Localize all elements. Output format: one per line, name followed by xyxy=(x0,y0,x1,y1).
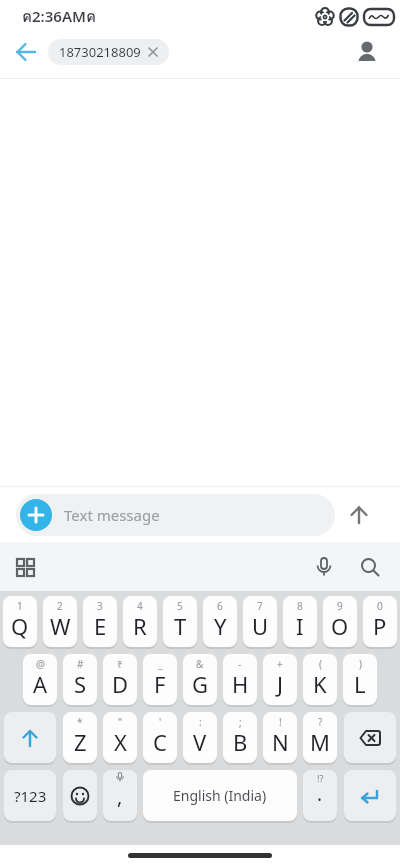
staticText: E xyxy=(94,611,107,641)
staticText: , xyxy=(117,783,123,810)
button[interactable]: 3 xyxy=(83,596,117,647)
staticText: R xyxy=(133,611,147,641)
staticText: C xyxy=(153,727,167,757)
button[interactable]: 4 xyxy=(123,596,157,647)
staticText: 6 xyxy=(217,599,223,613)
staticText: ! xyxy=(279,715,282,729)
button[interactable] xyxy=(10,552,40,582)
staticText: G xyxy=(192,669,209,699)
button[interactable]: 2 xyxy=(43,596,77,647)
button[interactable]: @ xyxy=(23,654,57,705)
button[interactable]: 7 xyxy=(243,596,277,647)
staticText: ) xyxy=(359,657,362,671)
button[interactable]: 9 xyxy=(323,596,357,647)
staticText: " xyxy=(118,715,123,729)
staticText: Text message xyxy=(64,505,160,525)
staticText: + xyxy=(277,657,283,671)
button[interactable] xyxy=(344,770,396,821)
button[interactable]: 18730218809 xyxy=(48,39,169,65)
staticText: T xyxy=(174,611,187,641)
staticText: & xyxy=(196,657,204,671)
button[interactable]: ; xyxy=(223,712,257,763)
button[interactable]: + xyxy=(263,654,297,705)
button[interactable]: : xyxy=(183,712,217,763)
staticText: - xyxy=(238,657,242,671)
button[interactable] xyxy=(20,499,52,531)
staticText: ? xyxy=(318,715,323,729)
button[interactable]: - xyxy=(223,654,257,705)
staticText: 8 xyxy=(297,599,303,613)
staticText: J xyxy=(277,669,284,699)
button[interactable]: " xyxy=(103,712,137,763)
staticText: H xyxy=(232,669,249,699)
button[interactable]: ?123 xyxy=(4,770,56,821)
staticText: W xyxy=(50,611,71,641)
staticText: * xyxy=(77,715,83,729)
button[interactable]: , xyxy=(103,770,137,821)
staticText: A xyxy=(33,669,48,699)
button[interactable]: 0 xyxy=(363,596,397,647)
button[interactable]: ' xyxy=(143,712,177,763)
staticText: S xyxy=(74,669,87,699)
staticText: M xyxy=(310,727,330,757)
staticText: D xyxy=(112,669,129,699)
button[interactable]: 8 xyxy=(283,596,317,647)
staticText: 4 xyxy=(137,599,143,613)
staticText: 5 xyxy=(177,599,183,613)
button[interactable] xyxy=(8,34,44,70)
button[interactable] xyxy=(308,551,340,583)
button[interactable] xyxy=(350,35,384,69)
staticText: O xyxy=(331,611,349,641)
staticText: 1 xyxy=(17,599,23,613)
staticText: ( xyxy=(319,657,322,671)
staticText: !? xyxy=(317,772,324,784)
staticText: . xyxy=(317,781,323,807)
staticText: 9 xyxy=(337,599,343,613)
staticText: P xyxy=(373,611,387,641)
staticText: 2 xyxy=(57,599,63,613)
staticText: B xyxy=(233,727,248,757)
button[interactable]: Text message xyxy=(16,494,335,536)
button[interactable]: 1 xyxy=(3,596,37,647)
button[interactable]: # xyxy=(63,654,97,705)
button[interactable] xyxy=(63,770,97,821)
staticText: # xyxy=(77,657,84,671)
staticText: ; xyxy=(239,715,242,729)
staticText: Q xyxy=(11,611,29,641)
staticText: I xyxy=(296,611,304,641)
button[interactable]: ! xyxy=(263,712,297,763)
staticText: ?123 xyxy=(14,786,47,806)
button[interactable]: ? xyxy=(303,712,337,763)
button[interactable]: ₹ xyxy=(103,654,137,705)
staticText: U xyxy=(252,611,269,641)
staticText: Y xyxy=(214,611,227,641)
staticText: Z xyxy=(74,727,87,757)
staticText: N xyxy=(272,727,289,757)
button[interactable] xyxy=(344,712,396,763)
staticText: 3 xyxy=(97,599,103,613)
staticText: K xyxy=(313,669,327,699)
button[interactable]: English (India) xyxy=(143,770,297,821)
button[interactable]: _ xyxy=(143,654,177,705)
staticText: F xyxy=(154,669,166,699)
staticText: L xyxy=(354,669,366,699)
button[interactable] xyxy=(339,495,379,535)
button[interactable]: ) xyxy=(343,654,377,705)
staticText: ' xyxy=(159,715,162,729)
button[interactable]: ( xyxy=(303,654,337,705)
button[interactable] xyxy=(354,551,386,583)
button[interactable]: 6 xyxy=(203,596,237,647)
staticText: _ xyxy=(158,657,163,671)
button[interactable]: & xyxy=(183,654,217,705)
staticText: English (India) xyxy=(173,786,267,805)
staticText: V xyxy=(193,727,207,757)
staticText: 7 xyxy=(257,599,263,613)
button[interactable]: 5 xyxy=(163,596,197,647)
button[interactable]: !? xyxy=(303,770,337,821)
button[interactable] xyxy=(4,712,56,763)
staticText: 0 xyxy=(377,599,383,613)
staticText: X xyxy=(114,727,127,757)
button[interactable]: * xyxy=(63,712,97,763)
staticText: ₹ xyxy=(117,657,123,671)
staticText: : xyxy=(199,715,202,729)
